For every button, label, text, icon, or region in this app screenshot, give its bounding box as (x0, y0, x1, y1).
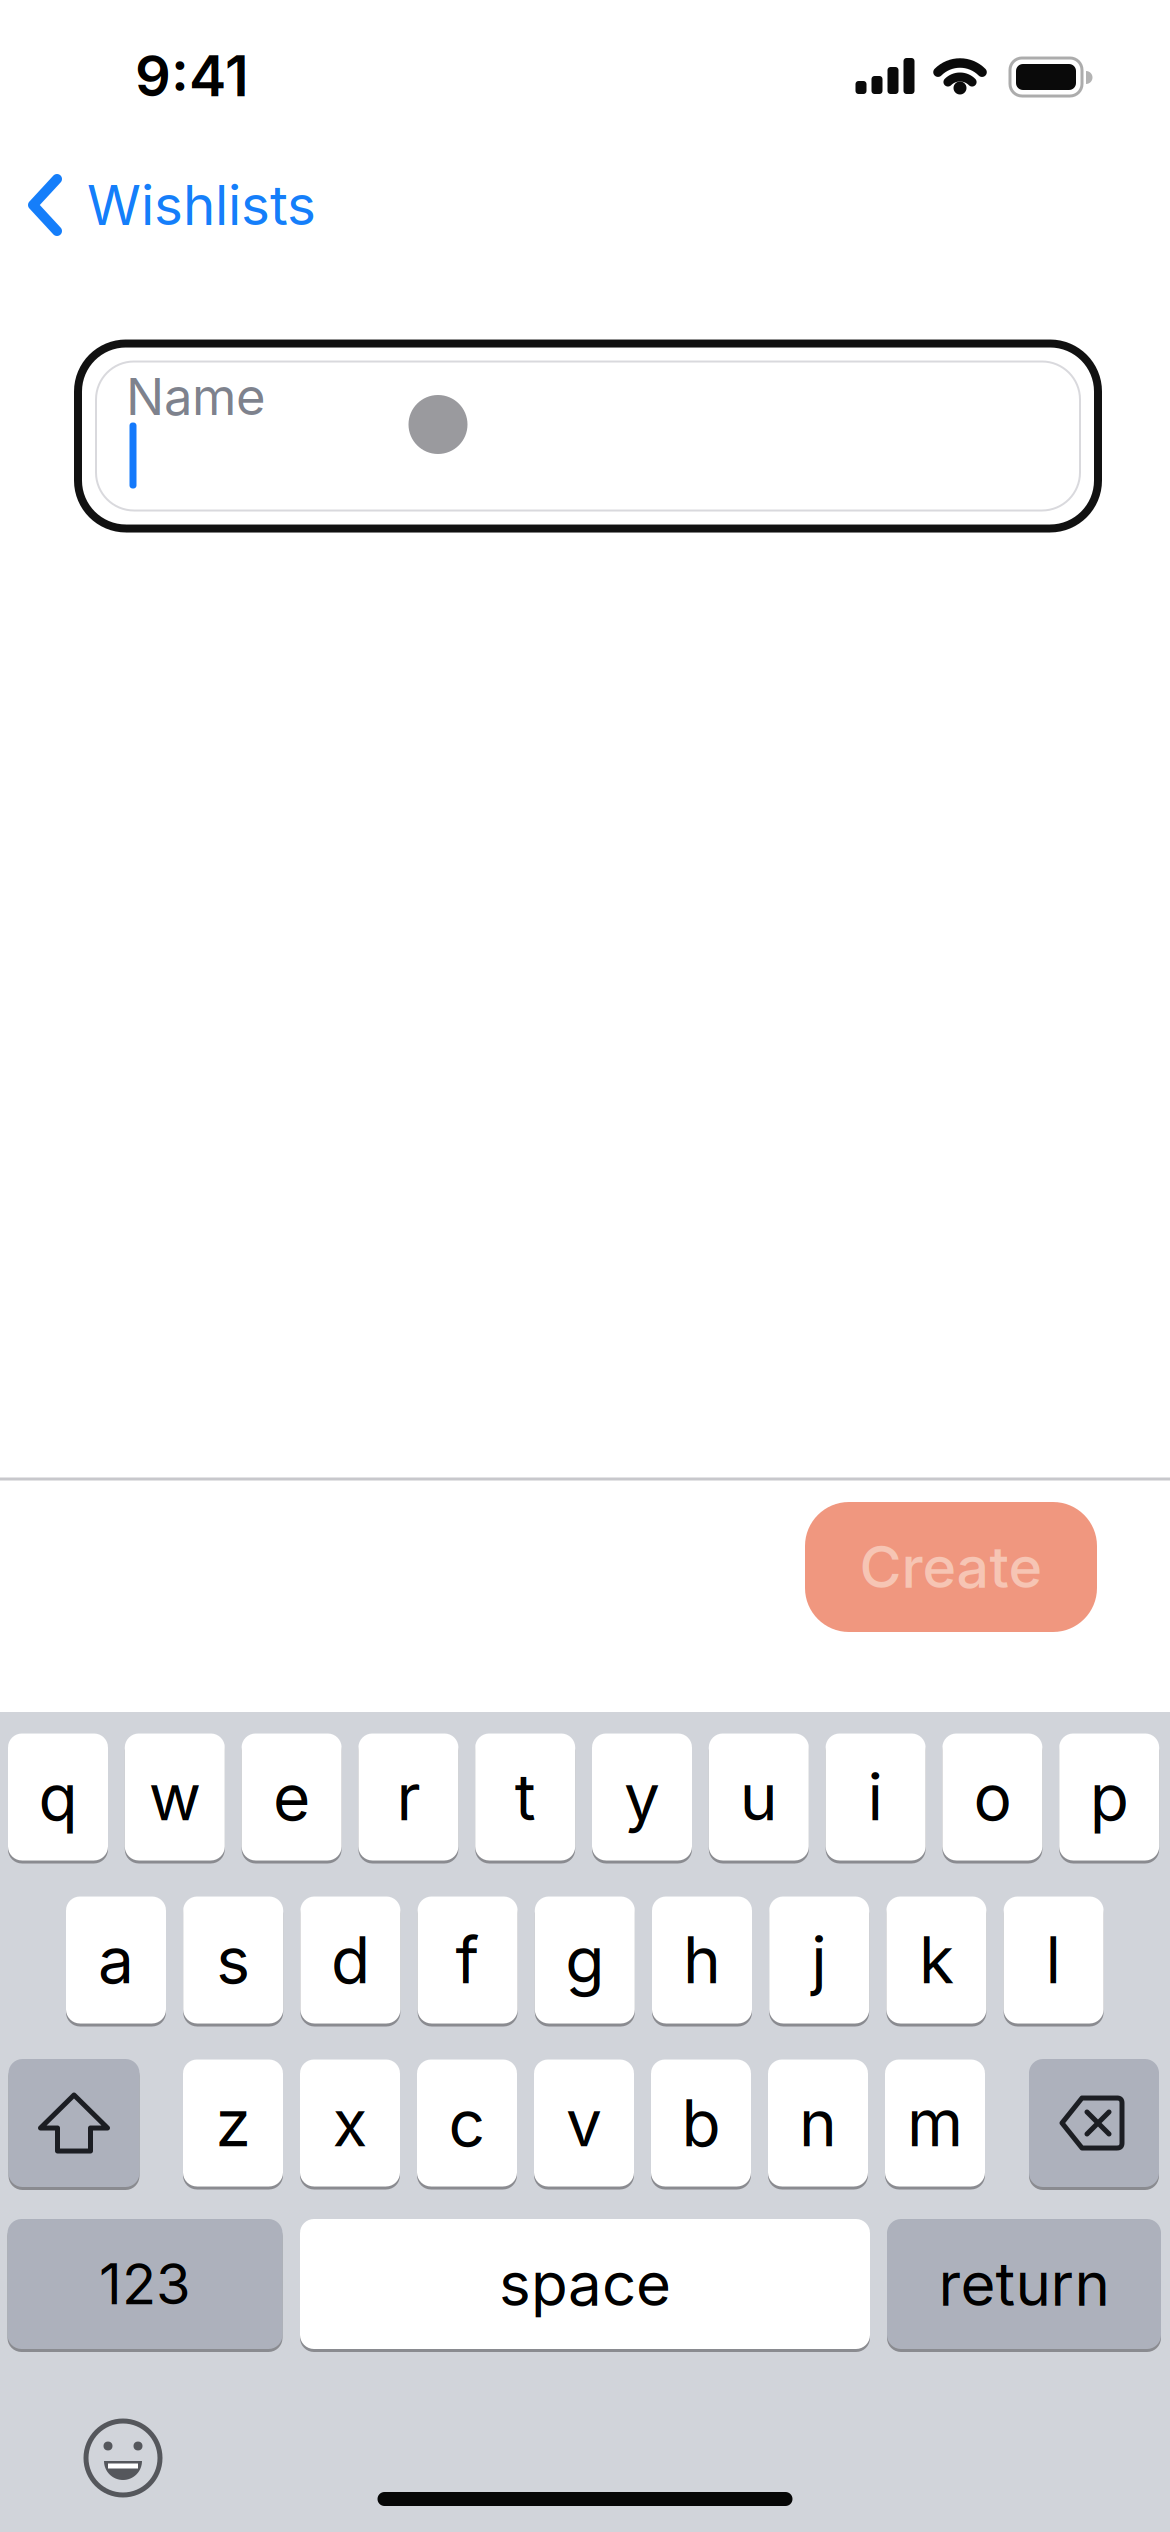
staticText: m (907, 2085, 963, 2161)
button[interactable]: e (242, 1733, 342, 1860)
staticText: i (868, 1759, 884, 1835)
button[interactable]: j (769, 1896, 869, 2023)
button[interactable]: x (300, 2059, 400, 2186)
button[interactable]: g (535, 1896, 635, 2023)
button[interactable]: Name (74, 339, 1102, 532)
button[interactable]: d (300, 1896, 400, 2023)
staticText: j (811, 1922, 827, 1998)
staticText: p (1090, 1759, 1129, 1835)
button[interactable]: Shift (8, 2059, 139, 2187)
button[interactable]: w (125, 1733, 225, 1860)
button[interactable]: return (887, 2219, 1161, 2349)
button[interactable]: 123 (7, 2219, 282, 2349)
staticText: x (332, 2085, 367, 2161)
staticText: t (515, 1759, 536, 1835)
button[interactable]: space (300, 2219, 870, 2349)
button[interactable]: b (651, 2059, 751, 2186)
button[interactable]: n (768, 2059, 868, 2186)
button[interactable]: t (475, 1733, 575, 1860)
button[interactable]: Delete (1029, 2059, 1159, 2187)
staticText: a (98, 1922, 134, 1998)
staticText: h (683, 1922, 721, 1998)
button[interactable]: l (1004, 1896, 1104, 2023)
staticText: w (149, 1759, 201, 1835)
button[interactable]: p (1059, 1733, 1159, 1860)
button[interactable]: Create (805, 1502, 1097, 1632)
staticText: y (624, 1759, 660, 1835)
staticText: g (565, 1922, 604, 1998)
button[interactable]: u (709, 1733, 809, 1860)
staticText: b (681, 2085, 720, 2161)
staticText: k (919, 1922, 954, 1998)
staticText: space (499, 2249, 671, 2319)
staticText: l (1046, 1922, 1062, 1998)
staticText: r (396, 1759, 420, 1835)
staticText: Wishlists (87, 173, 316, 237)
staticText: e (273, 1759, 310, 1835)
staticText: 9:41 (135, 43, 249, 109)
button[interactable]: m (885, 2059, 985, 2186)
staticText: v (566, 2085, 602, 2161)
staticText: z (215, 2085, 250, 2161)
staticText: q (38, 1759, 77, 1835)
button[interactable]: h (652, 1896, 752, 2023)
button[interactable]: r (358, 1733, 458, 1860)
staticText: 123 (99, 2251, 191, 2317)
button[interactable]: i (826, 1733, 926, 1860)
button[interactable]: f (418, 1896, 518, 2023)
button[interactable]: v (534, 2059, 634, 2186)
button[interactable]: q (8, 1733, 108, 1860)
button[interactable]: a (66, 1896, 166, 2023)
staticText: c (448, 2085, 485, 2161)
button[interactable]: Wishlists (28, 173, 316, 237)
button[interactable]: s (183, 1896, 283, 2023)
button[interactable]: y (592, 1733, 692, 1860)
staticText: s (216, 1922, 250, 1998)
staticText: d (331, 1922, 370, 1998)
button[interactable]: k (886, 1896, 986, 2023)
staticText: o (973, 1759, 1011, 1835)
button[interactable]: c (417, 2059, 517, 2186)
staticText: n (799, 2085, 837, 2161)
button[interactable]: Emoji (78, 2413, 168, 2503)
staticText: f (456, 1922, 480, 1998)
staticText: return (938, 2249, 1109, 2319)
staticText: Name (126, 367, 266, 426)
staticText: u (740, 1759, 778, 1835)
button[interactable]: o (942, 1733, 1042, 1860)
staticText: Create (859, 1533, 1042, 1601)
button[interactable]: z (183, 2059, 283, 2186)
